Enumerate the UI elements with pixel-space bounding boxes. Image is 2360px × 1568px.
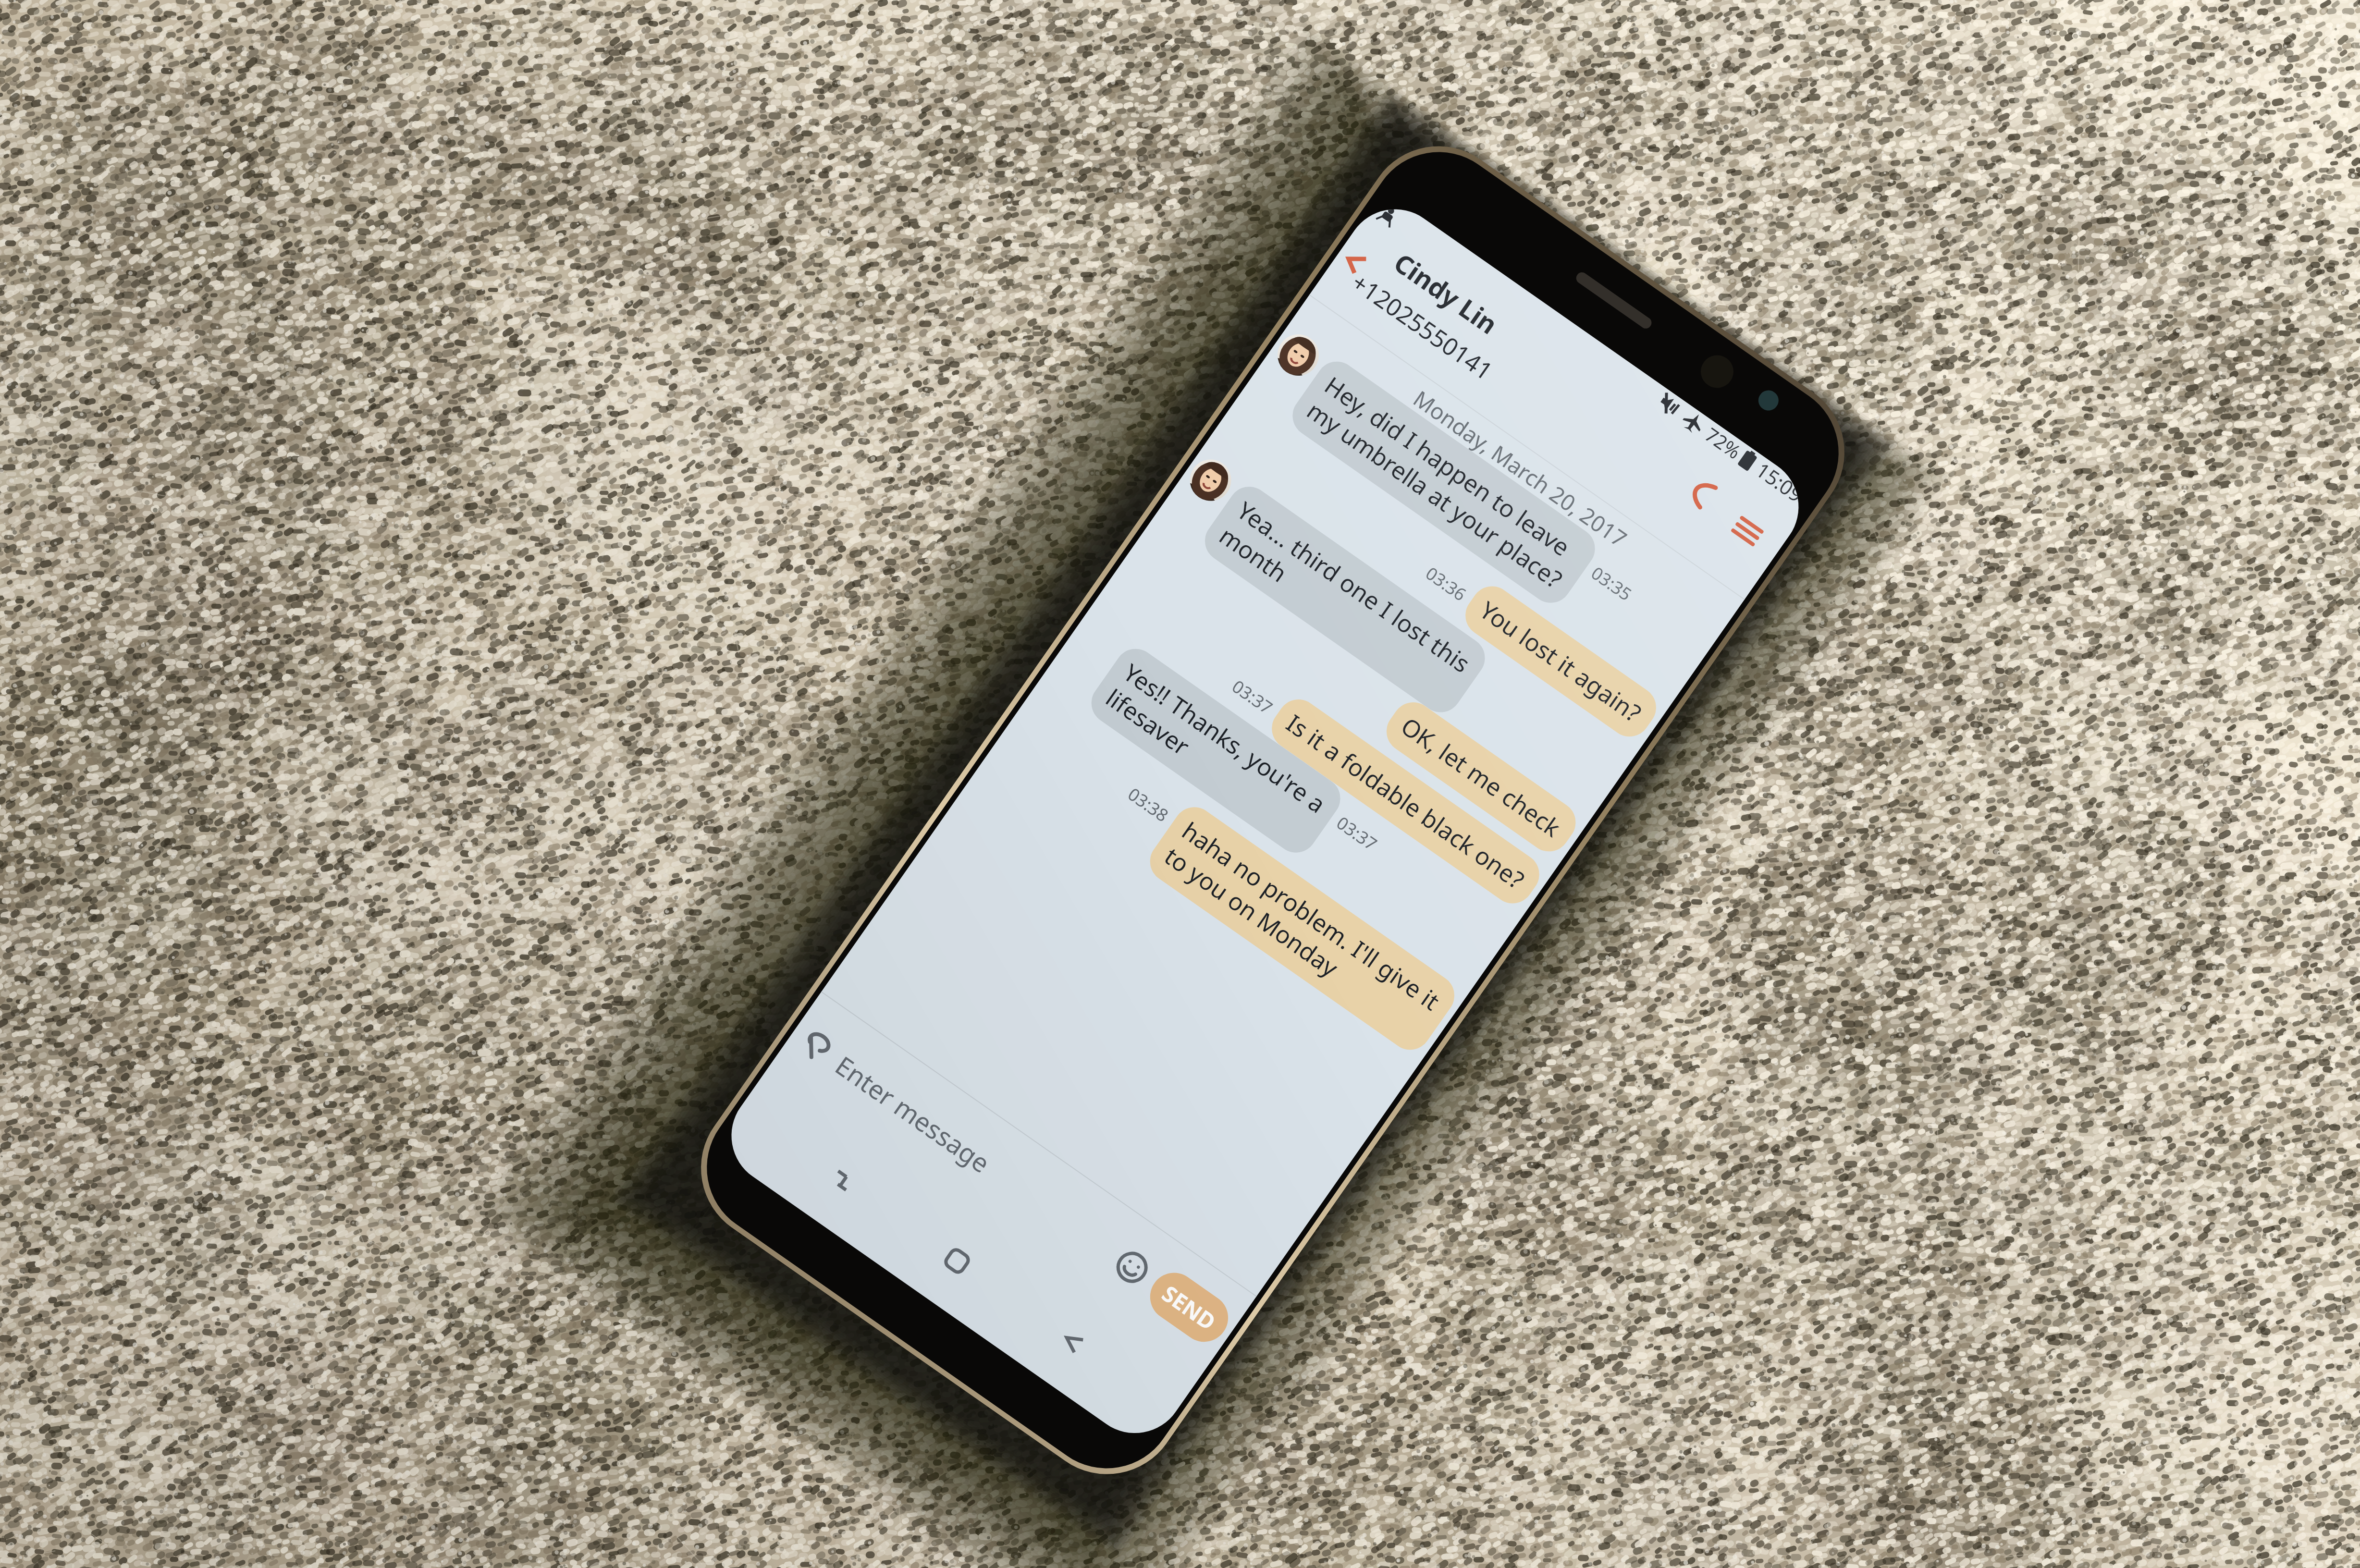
button[interactable]: Attach xyxy=(790,1020,842,1072)
button[interactable]: OK, let me check xyxy=(1132,522,1584,860)
button[interactable]: Back xyxy=(1042,1311,1103,1372)
staticText: 03:38 xyxy=(1123,782,1173,827)
staticText: SEND xyxy=(1156,1278,1222,1337)
staticText: Yes!! Thanks, you're a lifesaver xyxy=(1100,656,1332,845)
button[interactable]: 03:38 xyxy=(993,695,1463,1058)
button[interactable]: 03:36 xyxy=(1213,407,1664,745)
staticText: +12025550141 xyxy=(1345,266,1500,387)
button[interactable]: Emoji xyxy=(1105,1240,1159,1295)
staticText: 03:36 xyxy=(1421,561,1471,606)
staticText: You lost it again? xyxy=(1474,594,1648,729)
button[interactable]: Call xyxy=(1676,467,1728,520)
button[interactable]: 03:37 xyxy=(1096,574,1548,912)
button[interactable]: Yea... third one I lost this month xyxy=(1158,451,1629,816)
staticText: Hey, did I happen to leave my umbrella a… xyxy=(1301,369,1587,595)
staticText: OK, let me check xyxy=(1395,710,1567,844)
button[interactable]: Back xyxy=(1330,238,1380,287)
staticText: Is it a foldable black one? xyxy=(1280,707,1531,896)
button[interactable]: SEND xyxy=(1141,1263,1238,1351)
staticText: 72% xyxy=(1700,422,1746,464)
button[interactable]: Yes!! Thanks, you're a lifesaver xyxy=(1045,614,1515,978)
button[interactable]: Hey, did I happen to leave my umbrella a… xyxy=(1246,326,1717,690)
staticText: 15:09 xyxy=(1751,458,1808,508)
button[interactable]: Home xyxy=(926,1230,988,1292)
staticText: Monday, March 20, 2017 xyxy=(1408,383,1633,554)
button[interactable]: More options xyxy=(1721,505,1773,557)
staticText: 03:37 xyxy=(1228,675,1278,719)
staticText: 03:35 xyxy=(1587,561,1637,606)
staticText: haha no problem. I'll give it to you on … xyxy=(1158,814,1446,1042)
staticText: Enter message xyxy=(829,1047,997,1181)
button[interactable]: Recents xyxy=(811,1150,873,1211)
staticText: Cindy Lin xyxy=(1387,245,1505,342)
staticText: 03:37 xyxy=(1332,811,1382,856)
staticText: Yea... third one I lost this month xyxy=(1213,494,1477,705)
